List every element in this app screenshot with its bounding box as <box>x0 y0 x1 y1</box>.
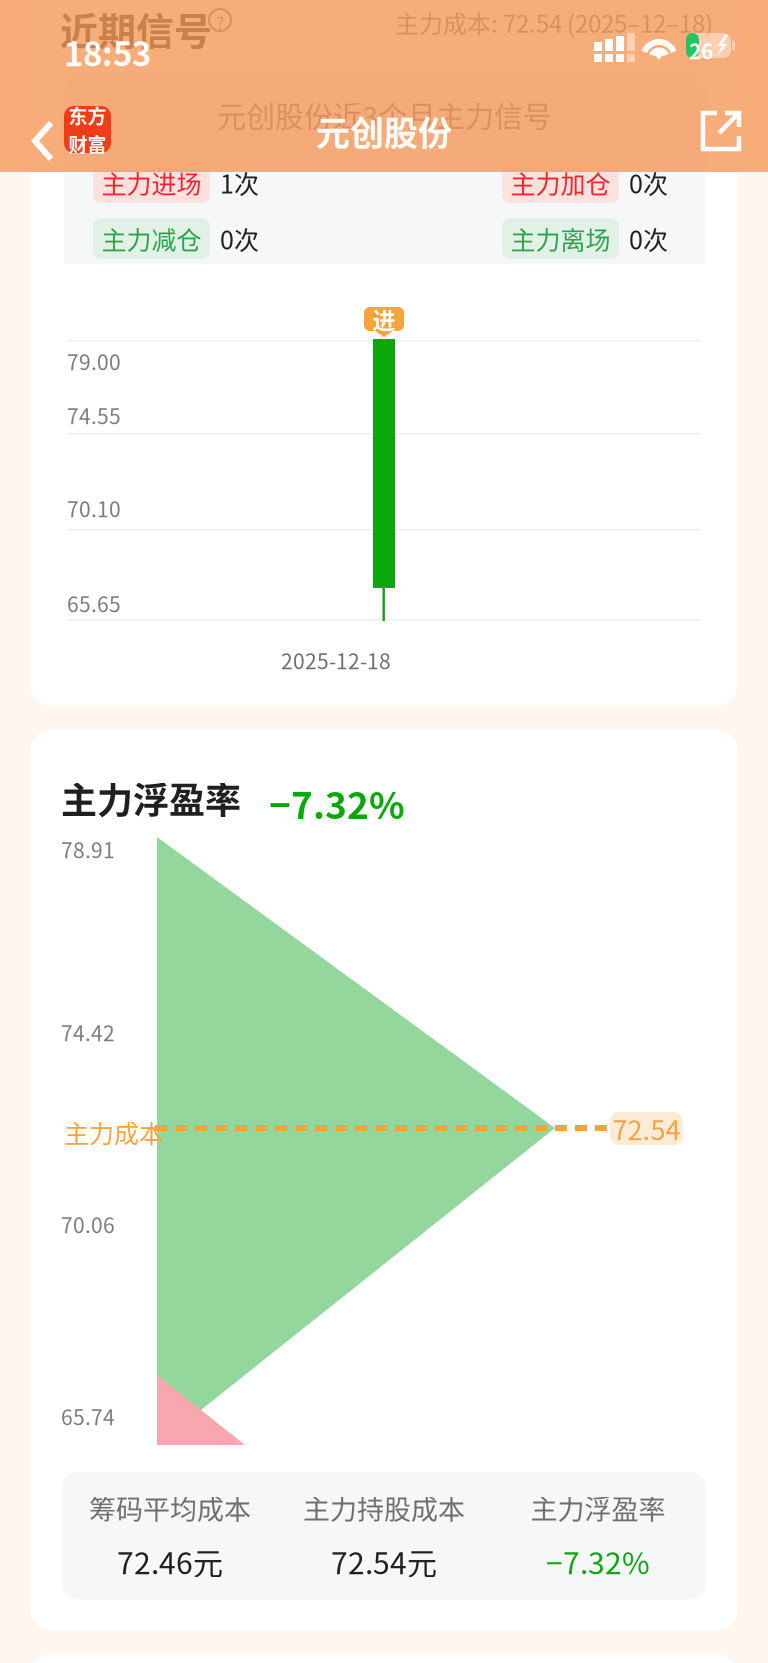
staticText: 70.06 <box>61 1209 115 1239</box>
button[interactable]: 东方财富 <box>64 106 111 153</box>
staticText: 东方 <box>68 101 106 129</box>
staticText: 近期信号 <box>60 1 212 56</box>
staticText: 主力进场 <box>101 164 201 201</box>
staticText: 74.55 <box>67 400 121 430</box>
staticText: 主力离场 <box>510 220 610 257</box>
staticText: 主力加仓 <box>510 164 610 201</box>
staticText: 78.91 <box>61 834 115 864</box>
staticText: ? <box>216 10 224 35</box>
button[interactable]: 返回 <box>18 107 68 175</box>
staticText: 主力成本 <box>64 1114 164 1150</box>
staticText: 79.00 <box>67 346 121 376</box>
staticText: 主力持股成本 <box>303 1488 465 1527</box>
staticText: 72.54元 <box>331 1539 437 1583</box>
staticText: 0次 <box>629 220 668 257</box>
staticText: 2025-12-18 <box>281 645 391 675</box>
staticText: 70.10 <box>67 493 121 523</box>
staticText: 元创股份近3个月主力信号 <box>217 94 552 136</box>
staticText: 65.65 <box>67 588 121 618</box>
staticText: −7.32% <box>546 1539 650 1583</box>
staticText: 主力减仓 <box>101 220 201 257</box>
staticText: 18:53 <box>64 28 151 76</box>
staticText: 72.54 <box>612 1109 680 1148</box>
staticText: 进 <box>372 302 395 336</box>
staticText: 0次 <box>220 220 259 257</box>
staticText: 65.74 <box>61 1401 115 1431</box>
staticText: 主力浮盈率 <box>530 1488 665 1527</box>
staticText: 财富 <box>68 130 106 157</box>
staticText: 74.42 <box>61 1017 115 1047</box>
button[interactable]: 分享 <box>686 96 756 166</box>
staticText: 主力浮盈率 <box>61 772 241 824</box>
staticText: −7.32% <box>269 776 405 830</box>
staticText: 0次 <box>629 164 668 201</box>
staticText: 筹码平均成本 <box>89 1488 251 1527</box>
staticText: 72.46元 <box>117 1539 223 1583</box>
staticText: 元创股份 <box>316 106 452 156</box>
staticText: 主力成本: 72.54 (2025–12–18) <box>395 5 713 40</box>
staticText: 1次 <box>220 164 259 201</box>
staticText: 26 <box>689 35 713 65</box>
